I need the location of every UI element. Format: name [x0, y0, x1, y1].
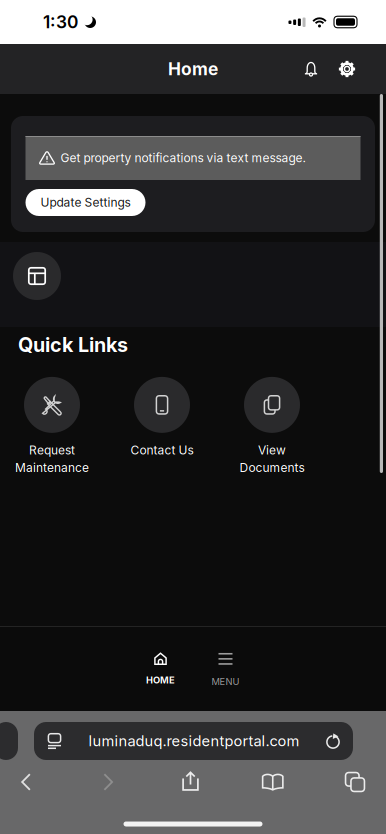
button[interactable]: Request [0, 377, 107, 469]
button[interactable]: View [217, 377, 327, 469]
staticText: Quick Links [18, 333, 128, 357]
staticText: Update Settings [40, 195, 130, 210]
button[interactable]: Notifications [293, 51, 329, 87]
button[interactable]: MENU [193, 642, 258, 696]
button[interactable]: Reload [313, 722, 353, 760]
button[interactable]: Dashboard layout [13, 252, 61, 300]
staticText: Maintenance [15, 460, 89, 475]
staticText: HOME [146, 674, 175, 686]
button[interactable]: HOME [128, 642, 193, 696]
staticText: Home [168, 58, 218, 79]
button[interactable]: Page settings [34, 722, 75, 760]
button[interactable]: Back [4, 763, 48, 801]
button[interactable]: Tabs [333, 763, 377, 801]
staticText: Contact Us [130, 443, 193, 457]
staticText: luminaduq.residentportal.com [88, 732, 299, 750]
button[interactable]: Bookmarks [251, 763, 295, 801]
staticText: 1:30 [43, 11, 78, 32]
button[interactable]: Settings [329, 51, 365, 87]
button[interactable]: Forward [86, 763, 130, 801]
button[interactable]: Share [168, 763, 212, 801]
button[interactable]: Update Settings [25, 189, 145, 216]
staticText: Get property notifications via text mess… [60, 151, 305, 165]
staticText: Request [29, 443, 75, 457]
staticText: Documents [239, 460, 304, 475]
staticText: MENU [211, 676, 239, 687]
button[interactable]: Contact Us [107, 377, 217, 469]
staticText: View [258, 443, 286, 457]
